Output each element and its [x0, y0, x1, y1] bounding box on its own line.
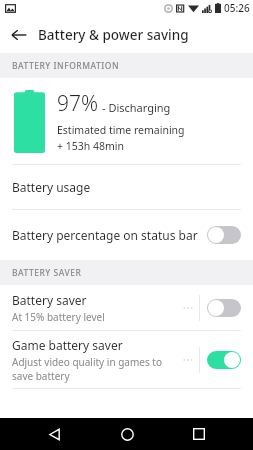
- button[interactable]: 97%: [0, 78, 253, 164]
- button[interactable]: Battery usage: [0, 165, 253, 209]
- staticText: 97%: [57, 89, 99, 118]
- staticText: Battery & power saving: [38, 26, 189, 44]
- staticText: At 15% battery level: [12, 310, 105, 324]
- staticText: - Discharging: [102, 100, 171, 115]
- staticText: Estimated time remaining: [57, 123, 185, 137]
- button[interactable]: Home: [109, 418, 145, 450]
- staticText: save battery: [12, 369, 70, 383]
- button[interactable]: Recents: [181, 418, 217, 450]
- button[interactable]: Back: [36, 418, 72, 450]
- staticText: + 153h 48min: [57, 139, 125, 153]
- staticText: Battery saver: [12, 292, 87, 308]
- button[interactable]: Battery saver: [12, 292, 182, 324]
- staticText: 05:26: [224, 1, 250, 15]
- staticText: Battery usage: [12, 179, 91, 195]
- button[interactable]: Back: [2, 18, 36, 52]
- staticText: Adjust video quality in games to: [12, 355, 162, 369]
- button[interactable]: Off: [207, 226, 241, 244]
- staticText: BATTERY SAVER: [12, 267, 82, 279]
- staticText: BATTERY INFORMATION: [12, 60, 119, 72]
- button[interactable]: Game battery saver: [12, 337, 182, 383]
- button[interactable]: Battery percentage on status bar: [0, 210, 253, 260]
- button[interactable]: On: [207, 351, 241, 369]
- staticText: Game battery saver: [12, 337, 123, 353]
- button[interactable]: Off: [207, 299, 241, 317]
- staticText: Battery percentage on status bar: [12, 227, 207, 243]
